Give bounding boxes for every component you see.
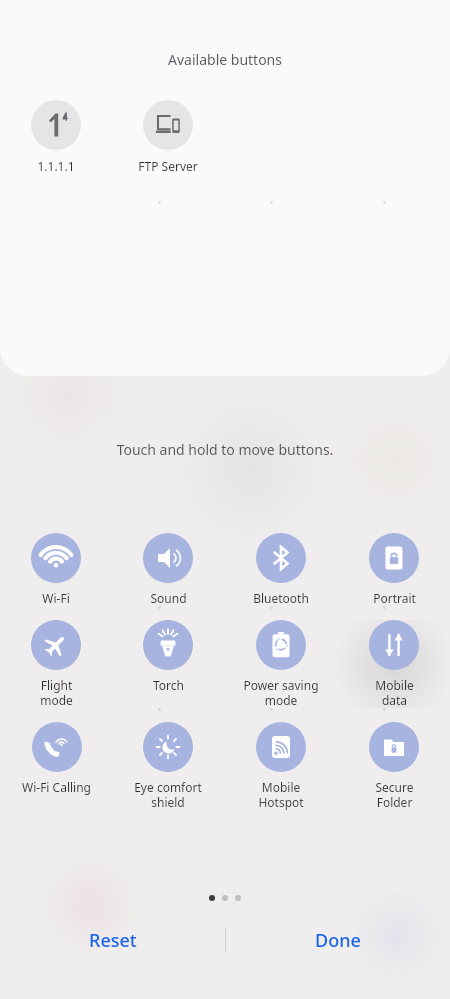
staticText: Torch bbox=[153, 677, 184, 693]
button[interactable]: Eye comfort shield bbox=[112, 722, 224, 810]
staticText: Touch and hold to move buttons. bbox=[0, 440, 450, 459]
staticText: Portrait bbox=[373, 590, 416, 606]
button[interactable]: Portrait bbox=[337, 533, 450, 606]
button[interactable]: Bluetooth bbox=[224, 533, 337, 606]
button[interactable]: Mobile data bbox=[337, 620, 450, 708]
staticText: Available buttons bbox=[0, 50, 450, 69]
staticText: Eye comfort shield bbox=[134, 779, 202, 810]
staticText: Reset bbox=[89, 928, 137, 953]
button[interactable]: Torch bbox=[112, 620, 224, 693]
staticText: Wi-Fi bbox=[42, 590, 70, 606]
button[interactable]: Secure Folder bbox=[337, 722, 450, 810]
staticText: 1.1.1.1 bbox=[37, 158, 75, 174]
button[interactable]: Mobile Hotspot bbox=[224, 722, 337, 810]
button[interactable]: FTP Server bbox=[112, 100, 224, 174]
button[interactable]: Sound bbox=[112, 533, 224, 606]
staticText: Flight mode bbox=[40, 677, 73, 708]
button[interactable]: Wi-Fi Calling bbox=[0, 722, 112, 795]
staticText: Power saving mode bbox=[243, 677, 319, 708]
button[interactable]: 1.1.1.1 bbox=[0, 100, 112, 174]
staticText: Mobile data bbox=[375, 677, 414, 708]
staticText: Done bbox=[315, 928, 361, 953]
button[interactable]: Power saving mode bbox=[224, 620, 337, 708]
button[interactable]: Reset bbox=[0, 918, 225, 962]
staticText: Sound bbox=[150, 590, 187, 606]
button[interactable]: Done bbox=[225, 918, 450, 962]
staticText: FTP Server bbox=[138, 158, 198, 174]
button[interactable]: Flight mode bbox=[0, 620, 112, 708]
button[interactable]: Wi-Fi bbox=[0, 533, 112, 606]
staticText: Wi-Fi Calling bbox=[22, 779, 91, 795]
staticText: Bluetooth bbox=[253, 590, 309, 606]
staticText: Secure Folder bbox=[375, 779, 414, 810]
staticText: Mobile Hotspot bbox=[258, 779, 304, 810]
